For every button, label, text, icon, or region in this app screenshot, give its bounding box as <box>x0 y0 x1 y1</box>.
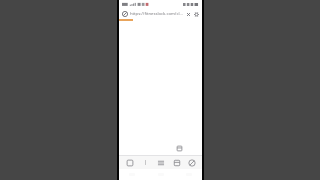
button[interactable]: Stop loading <box>184 10 192 18</box>
button[interactable]: Page settings <box>192 10 200 18</box>
button[interactable]: Block content <box>185 156 198 169</box>
button[interactable]: Menu <box>154 156 167 169</box>
button[interactable]: Bookmarks <box>170 156 183 169</box>
button[interactable]: Site information <box>121 10 129 18</box>
button[interactable]: Reader view <box>175 144 184 153</box>
button[interactable]: Tabs <box>123 156 136 169</box>
button[interactable] <box>139 156 152 169</box>
button[interactable]: https://fitnesslock.com/club.php <box>130 11 183 17</box>
staticText: https://fitnesslock.com/club.php <box>130 11 183 17</box>
